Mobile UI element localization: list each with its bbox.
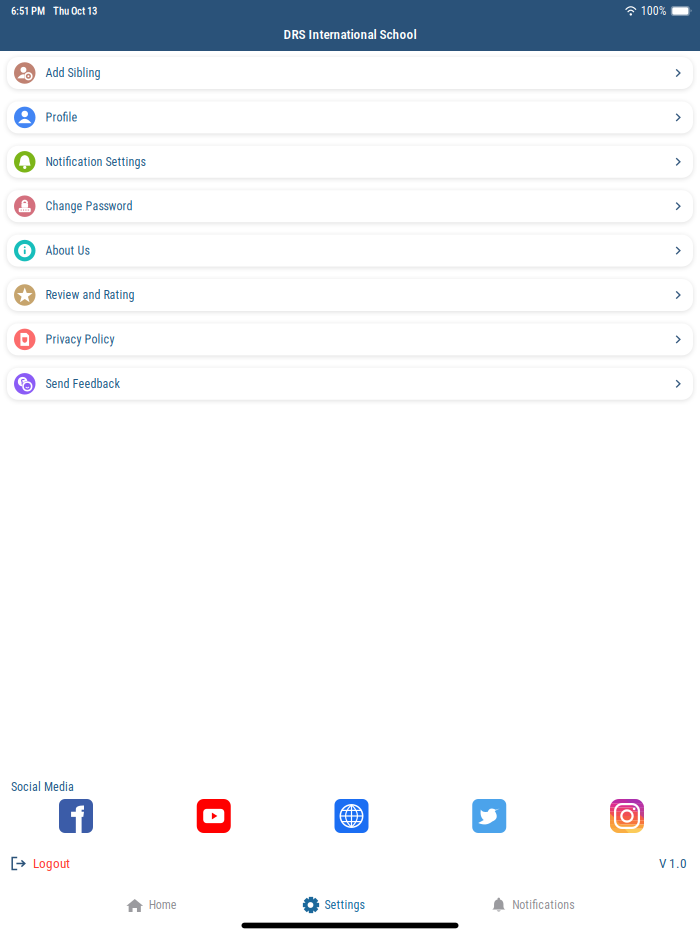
staticText: V 1.0 bbox=[659, 856, 687, 871]
staticText: About Us bbox=[45, 244, 89, 258]
staticText: 6:51 PM bbox=[11, 5, 45, 17]
button[interactable]: Profile bbox=[7, 101, 693, 133]
button[interactable]: Website bbox=[334, 799, 368, 833]
staticText: DRS International School bbox=[283, 27, 416, 42]
button[interactable]: About Us bbox=[7, 235, 693, 267]
button[interactable]: YouTube bbox=[197, 799, 231, 833]
button[interactable]: Home bbox=[126, 896, 177, 914]
button[interactable]: Twitter bbox=[472, 799, 506, 833]
button[interactable]: Review and Rating bbox=[7, 279, 693, 311]
staticText: Home bbox=[149, 898, 177, 912]
button[interactable]: Logout bbox=[0, 856, 70, 871]
staticText: Change Password bbox=[45, 199, 132, 213]
staticText: Notifications bbox=[512, 898, 574, 912]
button[interactable]: Notifications bbox=[490, 896, 574, 914]
button[interactable]: Add Sibling bbox=[7, 57, 693, 89]
button[interactable]: Send Feedback bbox=[7, 368, 693, 400]
staticText: Thu Oct 13 bbox=[53, 5, 97, 17]
staticText: Notification Settings bbox=[45, 155, 145, 169]
staticText: Review and Rating bbox=[45, 288, 134, 302]
staticText: Settings bbox=[324, 898, 364, 912]
button[interactable]: Settings bbox=[302, 896, 364, 914]
button[interactable]: Privacy Policy bbox=[7, 323, 693, 355]
staticText: Profile bbox=[45, 110, 77, 124]
staticText: Social Media bbox=[11, 780, 74, 794]
button[interactable]: Facebook bbox=[59, 799, 93, 833]
staticText: Add Sibling bbox=[45, 66, 100, 80]
staticText: 100% bbox=[641, 4, 667, 18]
button[interactable]: Notification Settings bbox=[7, 146, 693, 178]
button[interactable]: Change Password bbox=[7, 190, 693, 222]
staticText: Logout bbox=[33, 856, 70, 871]
button[interactable]: Instagram bbox=[610, 799, 644, 833]
staticText: Privacy Policy bbox=[45, 332, 114, 346]
staticText: Send Feedback bbox=[45, 377, 119, 391]
